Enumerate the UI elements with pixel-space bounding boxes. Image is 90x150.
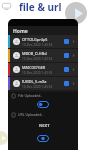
staticText: 10-Dec-2020 1:43:53	[22, 85, 53, 89]
other: Video	[2, 3, 11, 10]
other: Play video	[65, 2, 87, 24]
staticText: NEXT	[39, 123, 50, 128]
button[interactable]: MBDB_D-HBd	[8, 49, 78, 62]
staticText: file & url	[19, 0, 62, 14]
button[interactable]: MMC037GER	[8, 63, 78, 76]
button[interactable]: URL Uploaded..	[12, 112, 78, 117]
button[interactable]: Toggle	[37, 101, 49, 108]
button[interactable]: IUBDL_S-mXa	[8, 77, 78, 90]
staticText: File Uploaded..	[18, 93, 43, 98]
button[interactable]: OTTOLGpnIp5	[8, 35, 78, 48]
staticText: MBDB_D-HBd	[22, 51, 47, 56]
staticText: URL Uploaded..	[18, 112, 44, 117]
staticText: MMC037GER	[22, 65, 46, 70]
staticText: IUBDL_S-mXa	[22, 79, 47, 84]
other: Play	[0, 131, 8, 145]
staticText: 10-Dec-2020 1:43:53	[22, 57, 53, 61]
staticText: 10-Dec-2020 1:43:53	[22, 43, 53, 47]
staticText: Home	[13, 28, 28, 35]
staticText: OTTOLGpnIp5	[22, 37, 48, 42]
button[interactable]: Toggle	[37, 135, 49, 142]
button[interactable]: NEXT	[8, 123, 78, 129]
button[interactable]: File Uploaded..	[12, 93, 78, 98]
staticText: 10-Dec-2020 1:43:53	[22, 71, 53, 75]
